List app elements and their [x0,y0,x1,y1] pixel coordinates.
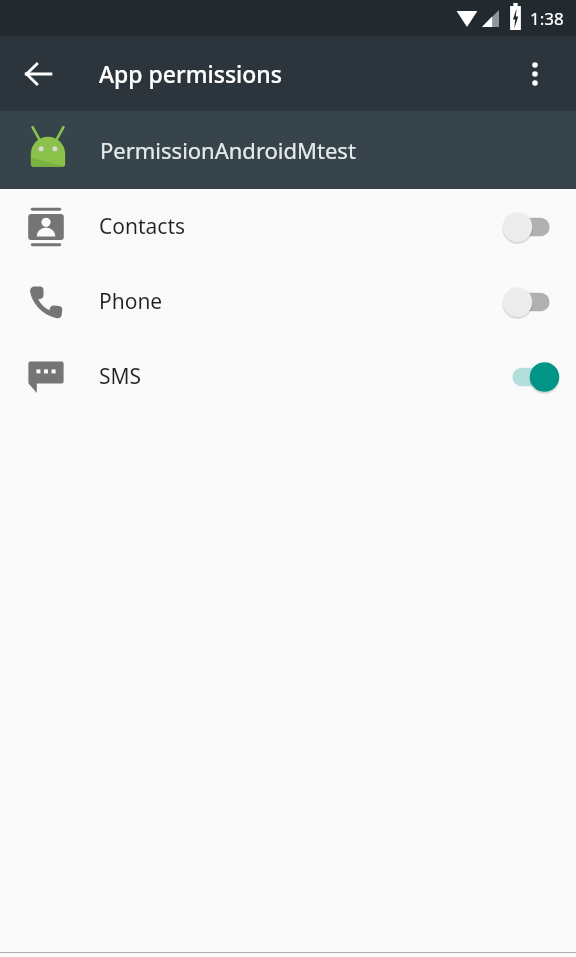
button[interactable]: Contacts permission [499,202,563,252]
staticText: 1:38 [530,7,564,30]
button[interactable]: PermissionAndroidMtest [0,111,576,189]
staticText: App permissions [99,58,282,89]
button[interactable]: Back [10,46,66,102]
button[interactable]: More options [511,50,559,98]
button[interactable]: Phone permission [499,277,563,327]
staticText: PermissionAndroidMtest [100,135,356,165]
button[interactable]: SMS permission [499,352,563,402]
staticText: SMS [99,362,499,391]
button[interactable]: Phone [0,264,576,339]
staticText: Contacts [99,212,499,241]
button[interactable]: Contacts [0,189,576,264]
button[interactable]: SMS [0,339,576,414]
staticText: Phone [99,287,499,316]
